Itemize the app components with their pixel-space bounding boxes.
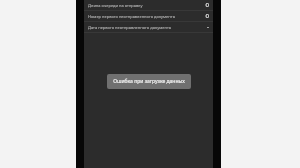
staticText: - bbox=[207, 23, 209, 31]
staticText: 0 bbox=[205, 1, 209, 9]
button[interactable]: Номер первого неотправленного документа bbox=[84, 11, 213, 22]
staticText: Номер первого неотправленного документа bbox=[88, 14, 175, 19]
button[interactable]: Длина очереди на отправку bbox=[84, 0, 213, 11]
button[interactable]: Дата первого неотправленного документа bbox=[84, 22, 213, 33]
staticText: Длина очереди на отправку bbox=[88, 3, 143, 8]
staticText: Дата первого неотправленного документа bbox=[88, 25, 171, 30]
staticText: 0 bbox=[205, 12, 209, 20]
staticText: Ошибка при загрузке данных bbox=[113, 78, 185, 85]
button[interactable]: Ошибка при загрузке данных bbox=[107, 74, 191, 89]
